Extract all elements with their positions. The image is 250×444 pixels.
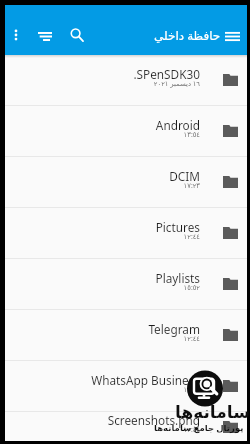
button[interactable]: Pictures — [5, 208, 247, 258]
staticText: ١٢:٤٤ — [183, 385, 200, 394]
staticText: Android — [155, 117, 200, 133]
staticText: ١٢:٤٤ — [183, 232, 200, 241]
staticText: ١٢:٤٤ — [183, 334, 200, 343]
staticText: ١٦ ديسمبر ٢٠٢١ — [153, 79, 200, 88]
staticText: سامانه‌ها — [175, 402, 250, 422]
button[interactable]: DCIM — [5, 157, 247, 207]
staticText: ١٢:٤٤ — [183, 425, 200, 434]
button[interactable]: More options — [8, 27, 24, 43]
staticText: WhatsApp Business — [91, 372, 200, 388]
button[interactable]: Telegram — [5, 310, 247, 360]
button[interactable]: WhatsApp Business — [5, 361, 247, 411]
staticText: پورتال جامع سامانه‌ها — [154, 422, 244, 434]
staticText: ١٣:٥٤ — [183, 130, 200, 139]
button[interactable]: Playlists — [5, 259, 247, 309]
staticText: ١٥:٥٢ — [183, 283, 200, 292]
staticText: Telegram — [148, 321, 200, 337]
button[interactable]: Sort — [36, 27, 54, 45]
staticText: DCIM — [169, 168, 200, 184]
staticText: .SPenSDK30 — [133, 66, 200, 82]
staticText: Playlists — [155, 270, 200, 286]
staticText: Screenshots.png — [107, 412, 200, 428]
staticText: حافظة داخلي — [154, 27, 221, 43]
staticText: Pictures — [155, 219, 200, 235]
button[interactable]: Screenshots.png — [5, 412, 247, 441]
button[interactable]: Android — [5, 106, 247, 156]
button[interactable]: Search — [68, 26, 86, 44]
button[interactable]: Menu — [223, 27, 241, 45]
button[interactable]: .SPenSDK30 — [5, 55, 247, 105]
staticText: ١٧:٢٣ — [183, 181, 200, 190]
